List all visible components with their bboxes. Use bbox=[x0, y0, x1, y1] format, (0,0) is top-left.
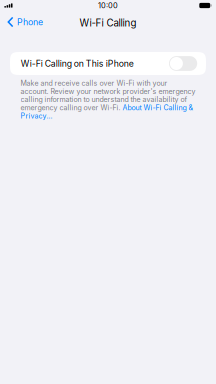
staticText: Wi-Fi Calling bbox=[79, 17, 136, 29]
button[interactable]: Wi-Fi Calling on This iPhone bbox=[10, 52, 206, 75]
staticText: Make and receive calls over Wi-Fi with y… bbox=[20, 79, 195, 120]
staticText: Phone bbox=[17, 17, 43, 27]
staticText: 10:00 bbox=[98, 1, 118, 10]
button[interactable]: About Wi-Fi Calling & Privacy bbox=[122, 103, 194, 119]
staticText: Wi-Fi Calling on This iPhone bbox=[21, 58, 134, 69]
button[interactable]: Phone bbox=[0, 14, 43, 30]
